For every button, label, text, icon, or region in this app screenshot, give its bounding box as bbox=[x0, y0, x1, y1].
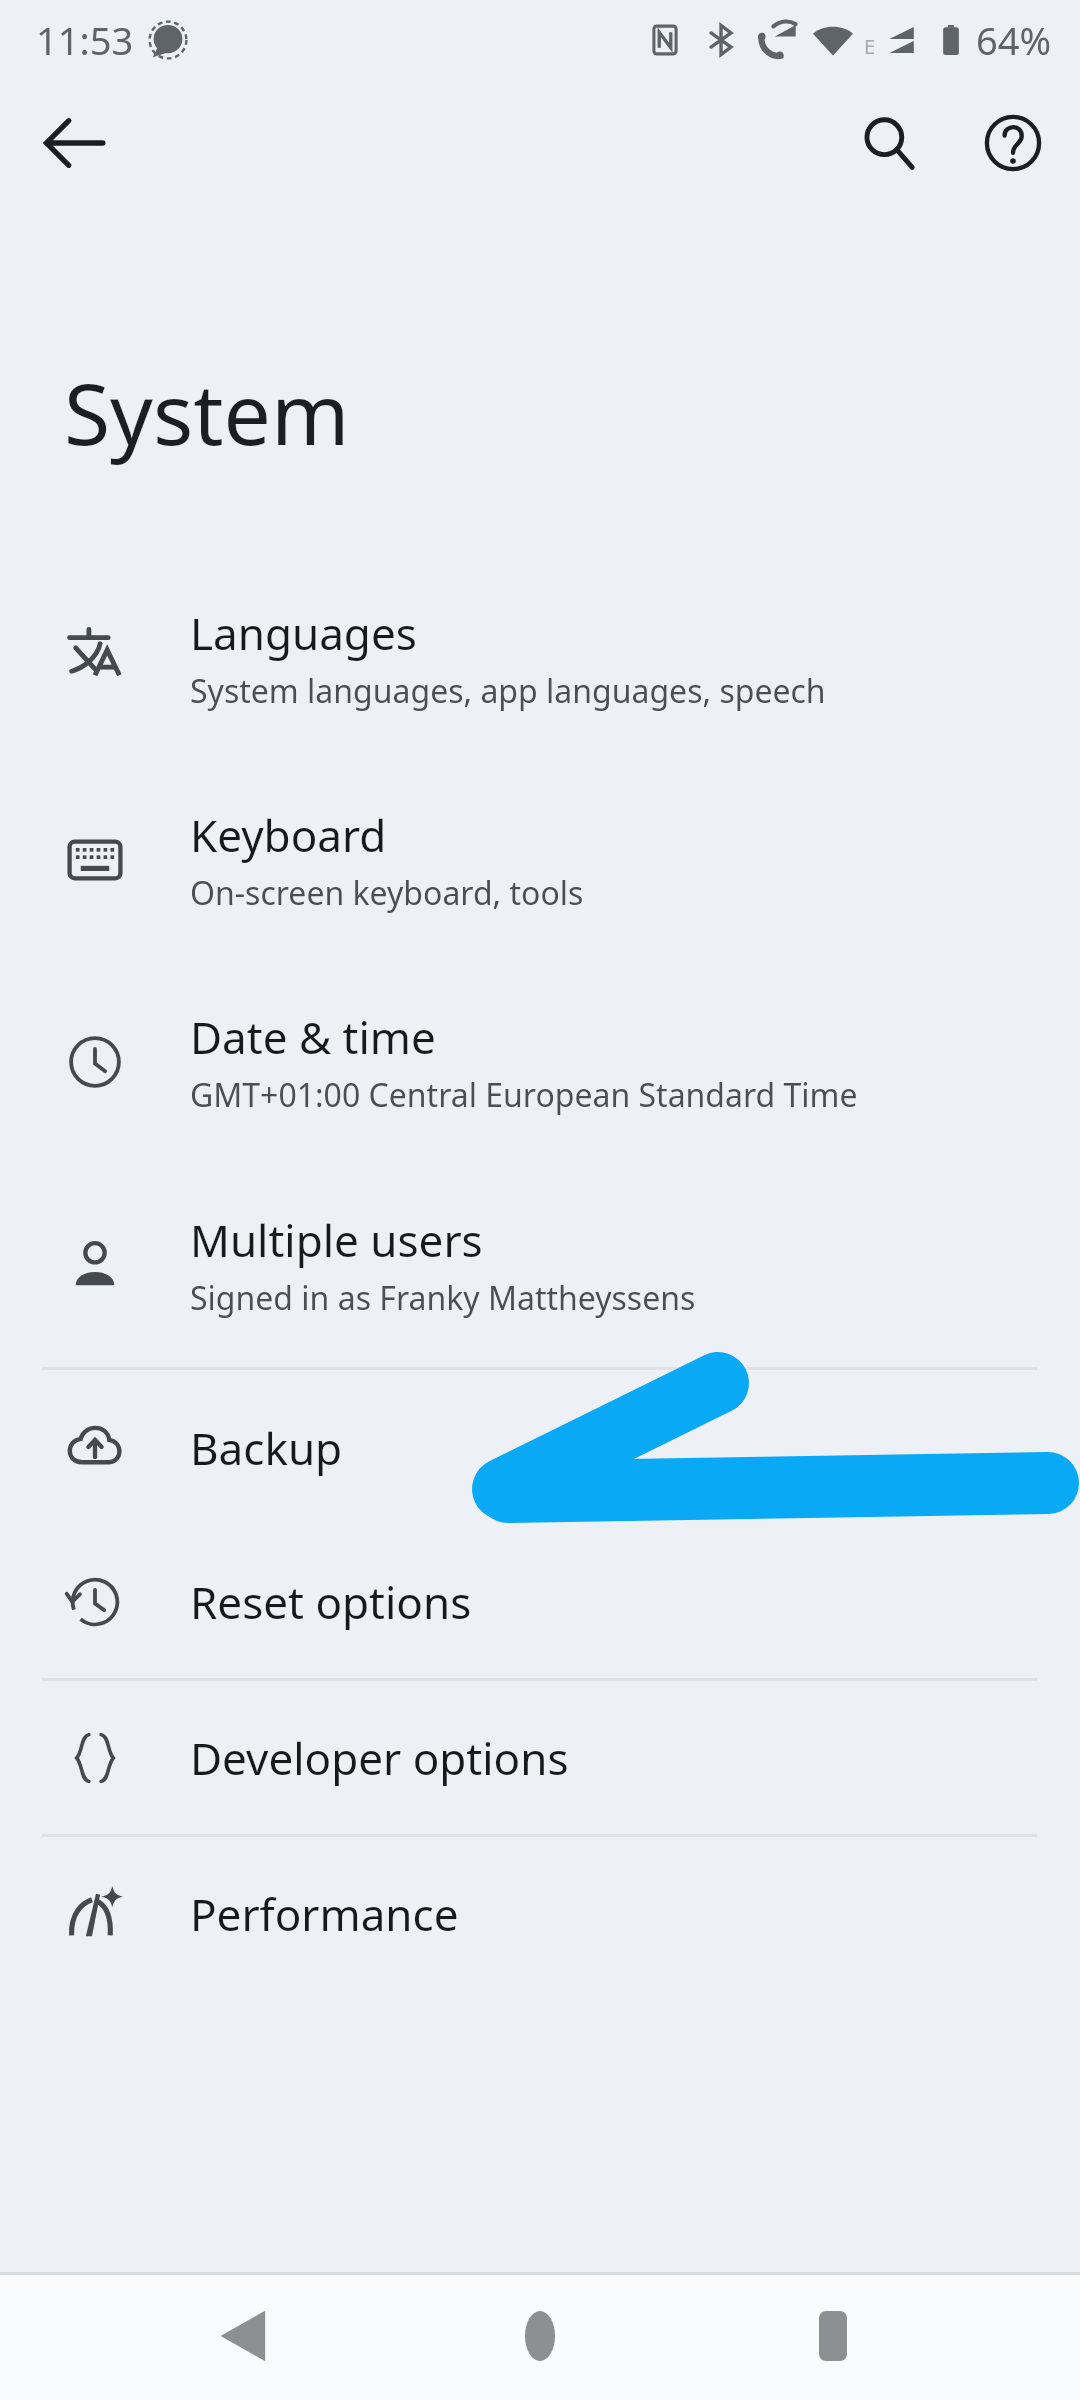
staticText: Reset options bbox=[190, 1572, 472, 1632]
staticText: Performance bbox=[190, 1884, 459, 1944]
button[interactable]: Recent apps bbox=[766, 2272, 900, 2400]
staticText: 64% bbox=[976, 14, 1052, 66]
button[interactable]: Back bbox=[180, 2272, 314, 2400]
staticText: Keyboard bbox=[190, 805, 387, 865]
button[interactable]: Help bbox=[962, 92, 1064, 194]
staticText: System bbox=[64, 355, 350, 469]
button[interactable]: Performance bbox=[0, 1837, 1080, 1990]
staticText: GMT+01:00 Central European Standard Time bbox=[190, 1073, 858, 1117]
button[interactable]: Multiple users bbox=[0, 1163, 1080, 1367]
staticText: Developer options bbox=[190, 1728, 569, 1788]
button[interactable]: Home bbox=[473, 2272, 607, 2400]
staticText: Backup bbox=[190, 1418, 343, 1478]
button[interactable]: Search bbox=[838, 92, 940, 194]
button[interactable]: Languages bbox=[0, 557, 1080, 759]
staticText: 11:53 bbox=[36, 14, 134, 66]
button[interactable]: Back bbox=[24, 92, 126, 194]
button[interactable]: Date & time bbox=[0, 961, 1080, 1163]
staticText: System languages, app languages, speech bbox=[190, 669, 826, 713]
staticText: Multiple users bbox=[190, 1210, 483, 1270]
staticText: E bbox=[864, 33, 876, 60]
button[interactable]: Backup bbox=[0, 1370, 1080, 1525]
staticText: Languages bbox=[190, 603, 417, 663]
staticText: Signed in as Franky Mattheyssens bbox=[190, 1276, 696, 1320]
staticText: Date & time bbox=[190, 1007, 436, 1067]
button[interactable]: Keyboard bbox=[0, 759, 1080, 961]
button[interactable]: Developer options bbox=[0, 1681, 1080, 1834]
staticText: On-screen keyboard, tools bbox=[190, 871, 584, 915]
button[interactable]: Reset options bbox=[0, 1525, 1080, 1678]
